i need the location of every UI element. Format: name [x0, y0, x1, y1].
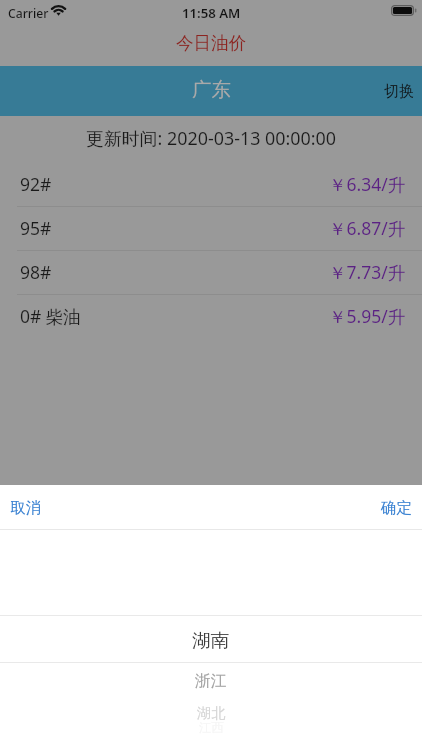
staticText: 11:58 AM: [182, 4, 241, 22]
other: Battery: [391, 5, 414, 16]
staticText: ￥5.95/升: [329, 304, 406, 328]
button[interactable]: 确定: [371, 486, 422, 530]
button[interactable]: 92#: [0, 162, 422, 206]
button[interactable]: 0# 柴油: [0, 294, 422, 338]
button[interactable]: 湖南: [0, 624, 422, 656]
button[interactable]: 浙江: [0, 665, 422, 697]
button[interactable]: 98#: [0, 250, 422, 294]
staticText: 今日油价: [176, 32, 247, 54]
staticText: 广东: [192, 77, 231, 102]
staticText: 取消: [10, 498, 41, 518]
staticText: 湖北: [197, 704, 226, 722]
button[interactable]: 切换: [376, 70, 422, 113]
staticText: 98#: [20, 260, 52, 284]
staticText: 更新时间: 2020-03-13 00:00:00: [86, 126, 337, 150]
staticText: ￥7.73/升: [329, 260, 406, 284]
button[interactable]: 广东: [0, 66, 422, 116]
button[interactable]: 95#: [0, 206, 422, 250]
staticText: 湖南: [192, 629, 230, 652]
button[interactable]: 湖北: [0, 697, 422, 729]
staticText: 0# 柴油: [20, 304, 81, 328]
staticText: 江西: [199, 720, 224, 736]
other: Wi-Fi: [47, 2, 70, 18]
staticText: ￥6.87/升: [329, 216, 406, 240]
button[interactable]: 取消: [0, 486, 51, 530]
staticText: 确定: [381, 498, 412, 518]
staticText: ￥6.34/升: [329, 172, 406, 196]
staticText: 浙江: [195, 671, 227, 691]
staticText: Carrier: [8, 5, 49, 22]
staticText: 切换: [384, 82, 414, 101]
staticText: 92#: [20, 172, 52, 196]
staticText: 95#: [20, 216, 52, 240]
